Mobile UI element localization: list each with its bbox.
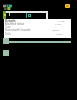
button[interactable]: Path: [4, 32, 71, 35]
staticText: Modified today: [5, 22, 25, 25]
staticText: 2 min: [55, 22, 62, 25]
button[interactable]: Modified today: [4, 22, 71, 25]
staticText: Shared with 3 people: [5, 28, 31, 31]
button[interactable]: Details: [4, 19, 71, 22]
button[interactable]: Shared with 3 people: [4, 28, 71, 31]
staticText: 12 KB: [58, 19, 65, 22]
staticText: Details: [5, 19, 16, 22]
staticText: Type: [5, 25, 11, 28]
button[interactable]: App logo: [3, 4, 12, 10]
button[interactable]: Type: [4, 25, 71, 28]
staticText: Drive: [56, 32, 62, 35]
staticText: Owner: [52, 28, 60, 31]
button[interactable]: [3, 38, 71, 44]
staticText: Path: [5, 32, 11, 35]
button[interactable]: Notifications: [65, 4, 70, 8]
